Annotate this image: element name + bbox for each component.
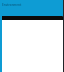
- staticText: Environment: [2, 3, 22, 7]
